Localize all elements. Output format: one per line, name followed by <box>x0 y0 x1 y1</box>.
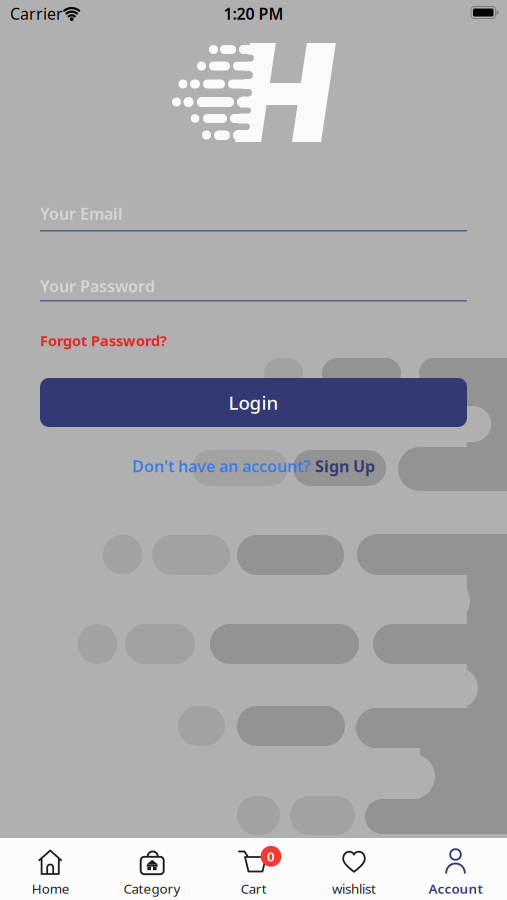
staticText: Login <box>228 390 278 415</box>
staticText: Your Email <box>40 203 123 224</box>
button[interactable]: Don't have an account? <box>132 455 375 477</box>
staticText: Home <box>32 880 70 897</box>
staticText: Carrier <box>10 3 63 24</box>
button[interactable]: 0 <box>203 837 304 900</box>
button[interactable]: Forgot Password? <box>40 331 467 350</box>
staticText: Sign Up <box>315 455 375 477</box>
staticText: 0 <box>267 847 275 865</box>
button[interactable]: wishlist <box>304 837 406 900</box>
staticText: 1:20 PM <box>223 3 283 24</box>
staticText: Forgot Password? <box>40 331 167 350</box>
staticText: wishlist <box>332 880 376 897</box>
button[interactable]: Login <box>40 378 467 427</box>
staticText: Your Password <box>40 275 155 297</box>
staticText: Account <box>428 880 482 897</box>
button[interactable]: Your Password <box>40 270 467 306</box>
staticText: Don't have an account? <box>132 455 310 477</box>
staticText: Cart <box>241 880 267 897</box>
button[interactable]: Category <box>101 837 203 900</box>
staticText: Category <box>124 880 181 897</box>
button[interactable]: Home <box>0 837 101 900</box>
button[interactable]: Account <box>406 837 507 900</box>
button[interactable]: Your Email <box>40 198 467 234</box>
